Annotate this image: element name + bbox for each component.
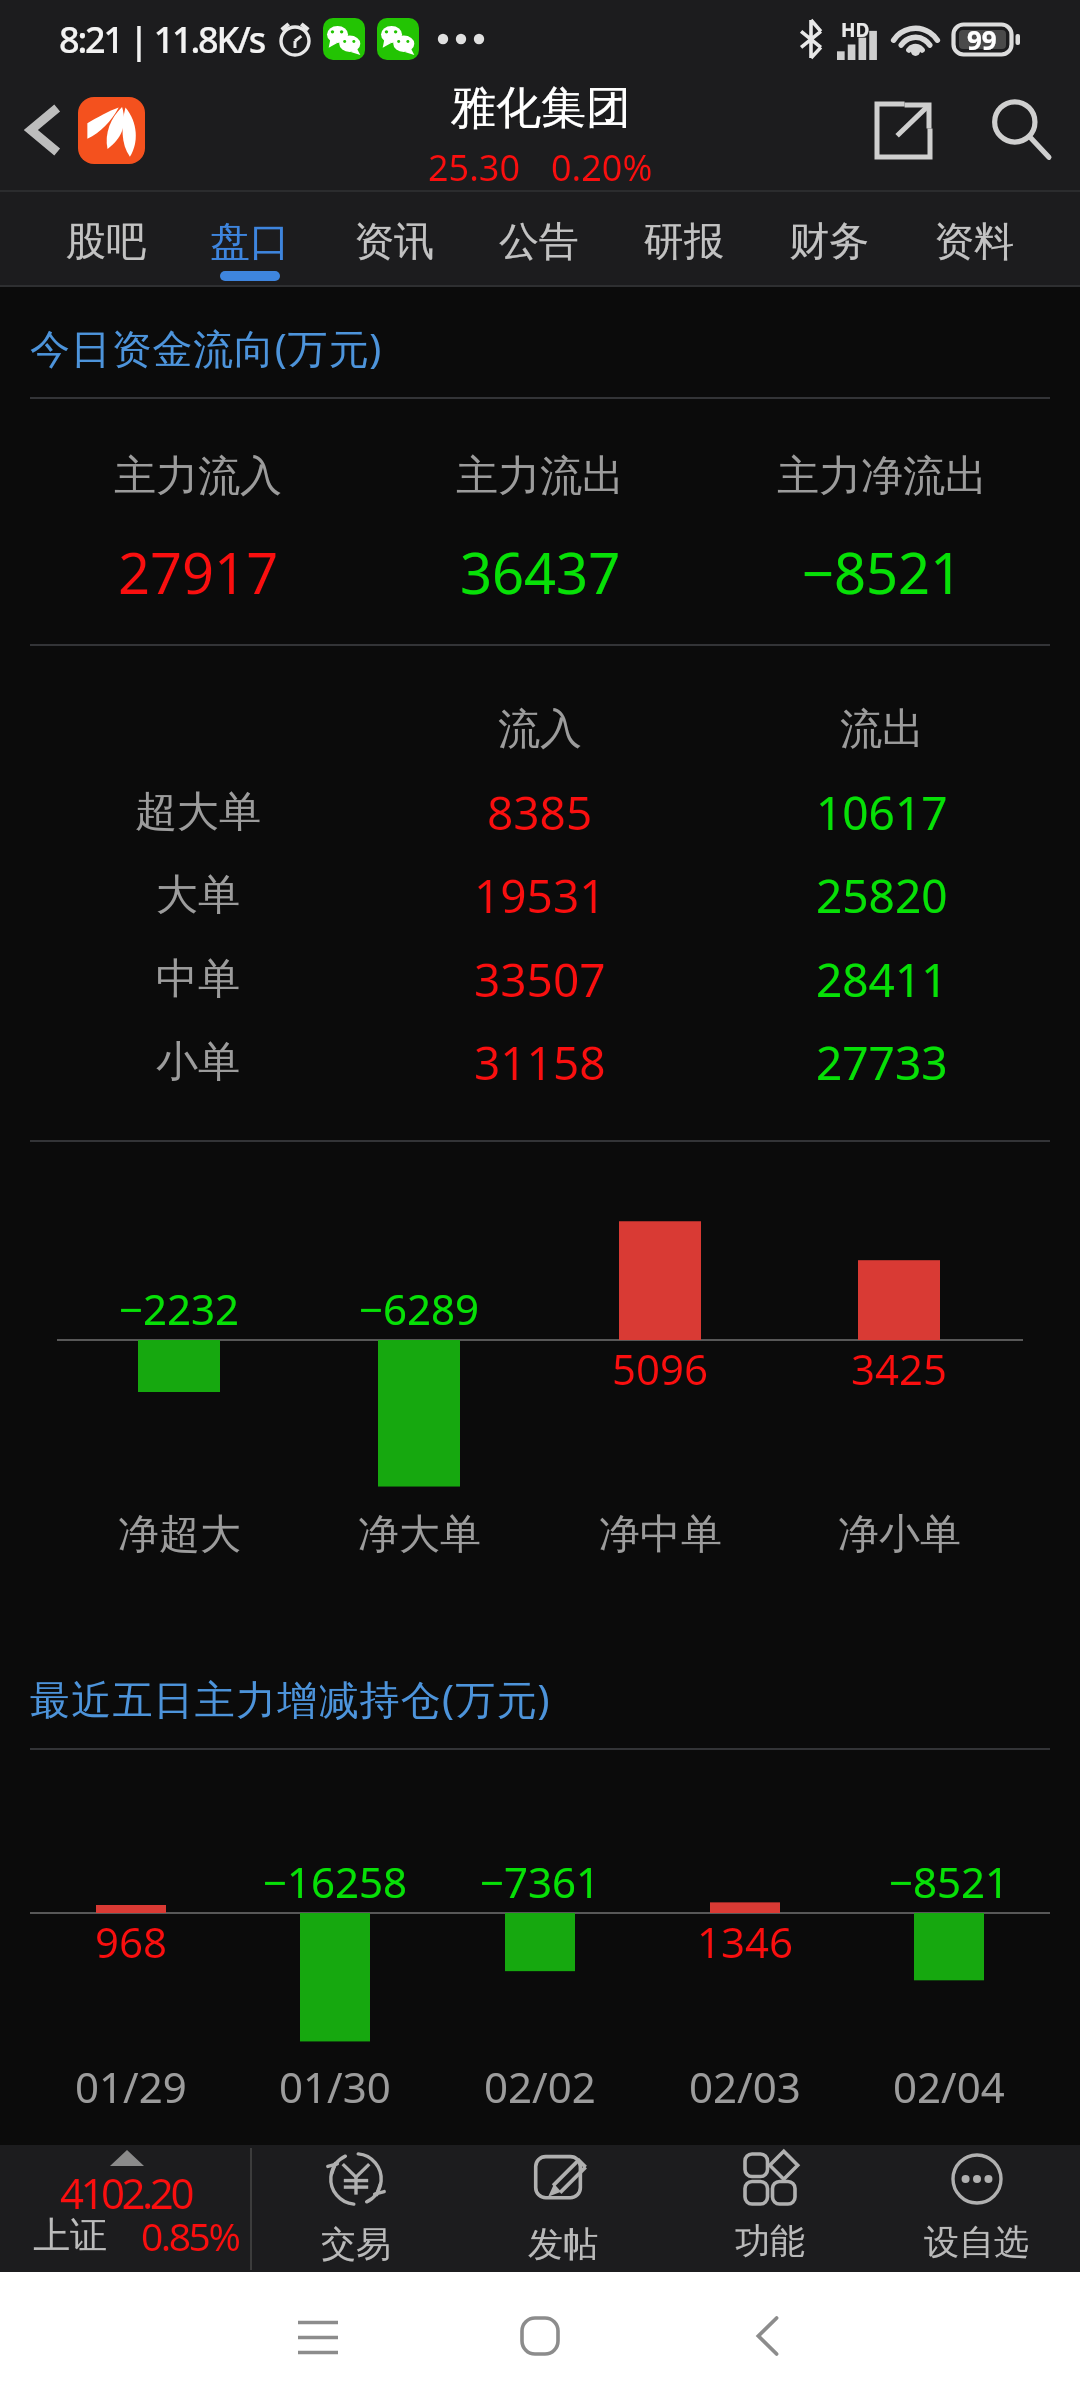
staticText: 27917 [118,534,279,610]
staticText: 公告 [499,216,579,266]
staticText: 02/03 [689,2058,801,2115]
button[interactable]: Recents [268,2272,368,2400]
staticText: 0.20% [551,143,653,192]
staticText: −7361 [480,1853,601,1910]
staticText: 主力净流出 [777,450,987,503]
staticText: 968 [95,1913,168,1970]
staticText: 流入 [498,703,582,756]
staticText: 功能 [735,2219,805,2263]
staticText: 主力流入 [114,450,282,503]
staticText: 净超大 [118,1509,241,1561]
staticText: 盘口 [210,216,290,266]
staticText: 25.30 [428,143,521,192]
staticText: HD [841,17,870,43]
staticText: 发帖 [528,2222,598,2266]
staticText: 主力流出 [456,450,624,503]
staticText: 99 [967,22,997,57]
staticText: 01/30 [279,2058,391,2115]
staticText: 36437 [460,534,621,610]
button[interactable]: 功能 [666,2145,873,2272]
button[interactable]: 资料 [901,192,1046,287]
staticText: 超大单 [135,786,261,839]
staticText: 02/04 [893,2058,1005,2115]
staticText: −2232 [119,1280,240,1337]
button[interactable]: 4102.20 [0,2145,250,2272]
staticText: 02/02 [484,2058,596,2115]
button[interactable]: 资讯 [322,192,466,287]
staticText: −6289 [359,1280,480,1337]
staticText: 净大单 [358,1509,481,1561]
button[interactable]: Search [962,78,1080,192]
button[interactable]: Back [718,2272,818,2400]
staticText: 27733 [816,1031,948,1094]
button[interactable]: 盘口 [178,192,322,287]
staticText: 交易 [321,2222,391,2266]
staticText: 0.85% [141,2209,239,2262]
staticText: 研报 [644,216,724,266]
staticText: 8385 [487,781,593,844]
staticText: 净中单 [599,1509,722,1561]
staticText: 最近五日主力增减持仓(万元) [30,1671,551,1726]
staticText: 28411 [816,948,948,1011]
staticText: 10617 [816,781,948,844]
staticText: 财务 [789,216,869,266]
staticText: 雅化集团 [451,80,631,137]
button[interactable]: 交易 [252,2145,459,2272]
button[interactable]: Home [490,2272,590,2400]
button[interactable]: 发帖 [459,2145,666,2272]
button[interactable]: 设自选 [873,2145,1080,2272]
staticText: 资讯 [354,216,434,266]
staticText: 3425 [851,1340,948,1397]
staticText: 小单 [156,1036,240,1089]
staticText: 25820 [816,864,948,927]
staticText: 31158 [474,1031,606,1094]
staticText: −16258 [263,1853,408,1910]
staticText: 大单 [156,869,240,922]
button[interactable]: 研报 [611,192,756,287]
button[interactable]: Back [0,73,78,187]
staticText: 1346 [697,1913,794,1970]
staticText: 股吧 [66,216,146,266]
button[interactable]: 公告 [466,192,611,287]
staticText: 5096 [612,1340,709,1397]
staticText: 今日资金流向(万元) [30,320,382,375]
staticText: 净小单 [838,1509,961,1561]
staticText: 4102.20 [60,2164,191,2221]
staticText: 中单 [156,953,240,1006]
button[interactable]: Share [844,78,962,192]
staticText: 19531 [474,864,606,927]
button[interactable]: East Money home [78,97,145,164]
staticText: −8521 [889,1853,1010,1910]
staticText: 33507 [474,948,606,1011]
staticText: 设自选 [924,2220,1029,2264]
staticText: 上证 [33,2212,107,2259]
staticText: 资料 [934,216,1014,266]
staticText: 流出 [840,703,924,756]
staticText: 01/29 [75,2058,187,2115]
button[interactable]: 财务 [756,192,901,287]
staticText: 8:21 | 11.8K/s [59,15,265,64]
staticText: −8521 [802,534,963,610]
button[interactable]: 股吧 [34,192,178,287]
